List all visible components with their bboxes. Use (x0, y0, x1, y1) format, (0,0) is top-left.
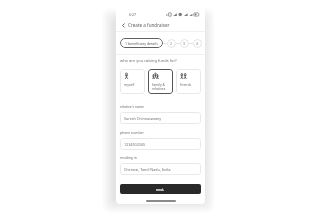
staticText: Chennai, Tamil Nadu, India (124, 167, 171, 172)
staticText: relative's name (120, 104, 144, 109)
button[interactable]: 1 beneficiary details (120, 38, 163, 48)
button[interactable]: 4 (193, 39, 202, 48)
button[interactable]: myself (120, 69, 145, 94)
staticText: friends (180, 82, 192, 87)
staticText: 6:27 (129, 12, 137, 17)
button[interactable]: 1234502345 (120, 138, 201, 150)
button[interactable]: family & relatives (148, 69, 173, 94)
button[interactable]: Suresh Chinnaswamy (120, 112, 201, 124)
staticText: who are you raising funds for? (120, 58, 177, 63)
staticText: residing in (120, 155, 137, 160)
button[interactable]: next. (120, 184, 201, 194)
staticText: Suresh Chinnaswamy (124, 116, 162, 121)
staticText: 1 beneficiary details (125, 41, 158, 46)
button[interactable]: friends (176, 69, 201, 94)
button[interactable]: 3 (180, 39, 189, 48)
button[interactable]: 2 (167, 39, 176, 48)
staticText: myself (124, 82, 135, 87)
staticText: phone number (120, 130, 144, 135)
staticText: 3 (183, 41, 186, 46)
staticText: family & relatives (152, 82, 166, 91)
button[interactable]: Chennai, Tamil Nadu, India (120, 163, 201, 175)
staticText: 1234502345 (124, 142, 146, 147)
staticText: 4 (196, 41, 199, 46)
staticText: Create a fundraiser (128, 22, 170, 28)
staticText: next. (156, 187, 165, 192)
staticText: 2 (170, 41, 173, 46)
button[interactable]: Back (118, 20, 128, 30)
